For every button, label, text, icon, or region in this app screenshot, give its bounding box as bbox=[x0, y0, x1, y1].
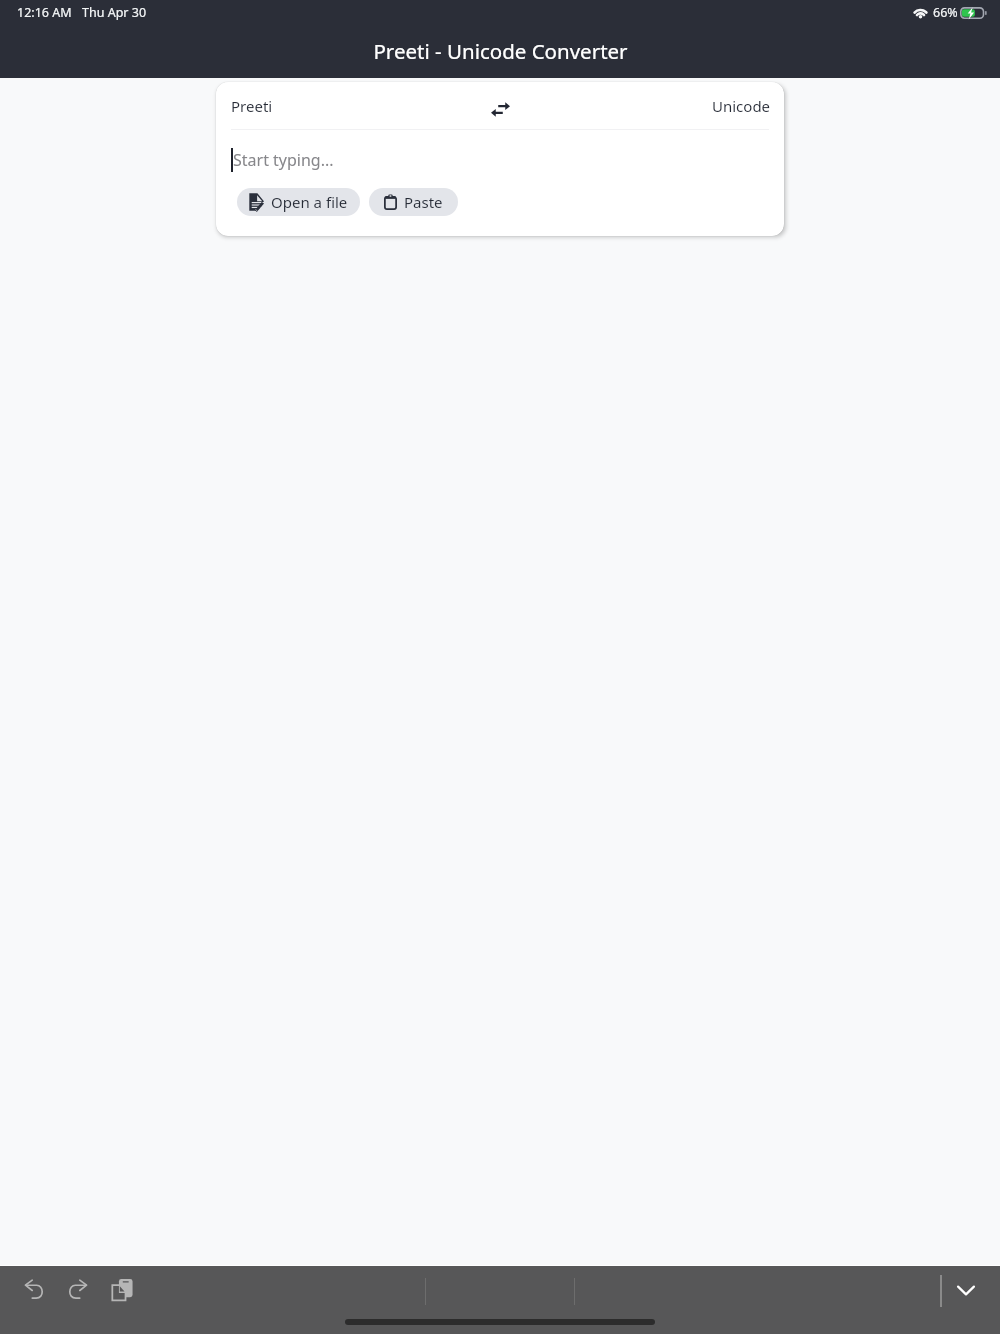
staticText: Thu Apr 30 bbox=[82, 4, 147, 21]
button[interactable]: Hide keyboard bbox=[949, 1273, 983, 1307]
button[interactable]: Paste bbox=[369, 188, 458, 216]
button[interactable]: Redo bbox=[61, 1273, 95, 1307]
staticText: Preeti - Unicode Converter bbox=[373, 37, 628, 65]
staticText: Start typing... bbox=[233, 149, 334, 171]
button[interactable]: Clipboard bbox=[105, 1273, 139, 1307]
staticText: Open a file bbox=[271, 192, 348, 212]
staticText: Paste bbox=[404, 192, 443, 212]
staticText: 66% bbox=[933, 4, 958, 21]
button[interactable]: Swap languages bbox=[484, 93, 516, 125]
staticText: Preeti bbox=[231, 96, 273, 116]
button[interactable]: Start typing... bbox=[216, 148, 784, 172]
button[interactable]: Undo bbox=[17, 1273, 51, 1307]
staticText: Unicode bbox=[712, 96, 771, 116]
button[interactable]: Open a file bbox=[237, 188, 360, 216]
staticText: 12:16 AM bbox=[17, 4, 72, 21]
